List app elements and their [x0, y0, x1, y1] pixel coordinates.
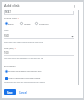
staticText: The size must be between 10 GB and 64 TB [4, 57, 44, 60]
button[interactable]: More options [71, 3, 77, 9]
button[interactable]: Snapshot [35, 22, 38, 25]
staticText: * [14, 47, 16, 50]
staticText: disk-1 [4, 10, 12, 14]
staticText: Type [4, 29, 9, 32]
staticText: Disk type can affect performance and pri… [4, 41, 44, 44]
staticText: SSD [4, 34, 9, 38]
staticText: Size (GB) [4, 47, 14, 50]
staticText: Apply optimized storage profile [8, 77, 41, 80]
staticText: Encryption [4, 65, 16, 68]
button[interactable]: Apply optimized storage profile [5, 77, 8, 80]
button[interactable]: Blank [5, 22, 8, 25]
button[interactable]: Google-managed encryption key [5, 70, 8, 73]
staticText: Google-managed encryption key [8, 70, 42, 73]
staticText: Name [4, 9, 10, 12]
button[interactable]: Cancel [18, 89, 28, 95]
staticText: Cancel [19, 91, 27, 94]
staticText: Snapshot [39, 23, 49, 26]
button[interactable]: Image [20, 22, 23, 25]
staticText: Add disk [4, 3, 20, 8]
staticText: Optimizes the disk for the workload you … [4, 81, 46, 84]
staticText: * [17, 17, 19, 20]
button[interactable]: Save [4, 89, 16, 95]
staticText: Image [24, 23, 31, 26]
staticText: 100 [4, 51, 9, 55]
staticText: Save [7, 91, 13, 94]
staticText: Source type [4, 17, 17, 20]
button[interactable]: Open type menu [71, 35, 74, 38]
staticText: Blank [8, 23, 14, 26]
